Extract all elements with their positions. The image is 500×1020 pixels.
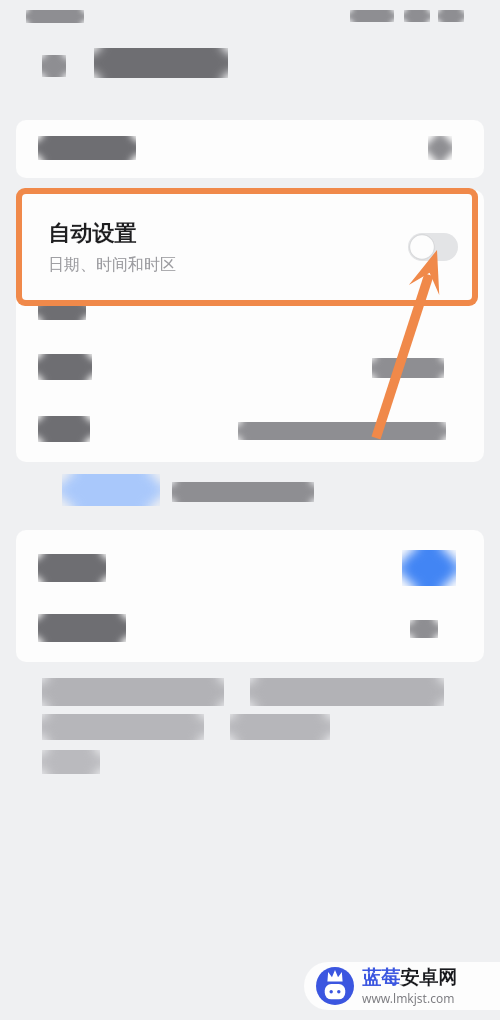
staticText: 安卓网 (400, 966, 457, 990)
staticText: www.lmkjst.com (362, 990, 455, 1006)
button[interactable] (16, 120, 484, 178)
button[interactable]: 自动设置 (22, 194, 472, 300)
button[interactable]: 自动设置开关，已关闭 (408, 233, 458, 261)
staticText: 日期、时间和时区 (48, 255, 176, 275)
staticText: 自动设置 (48, 220, 136, 248)
staticText: 蓝莓 (362, 966, 400, 990)
